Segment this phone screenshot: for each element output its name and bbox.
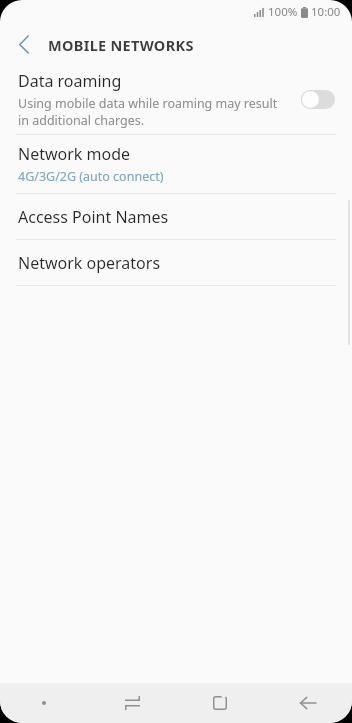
- staticText: 10:00: [311, 4, 341, 20]
- button[interactable]: Network mode: [0, 135, 352, 193]
- button[interactable]: Home: [176, 683, 264, 723]
- staticText: 100%: [268, 4, 298, 20]
- button[interactable]: Access Point Names: [0, 194, 352, 239]
- staticText: Data roaming: [18, 70, 122, 92]
- staticText: 4G/3G/2G (auto connect): [18, 168, 164, 185]
- button[interactable]: Network operators: [0, 240, 352, 285]
- button[interactable]: Data roaming: [0, 64, 352, 134]
- button[interactable]: Menu: [0, 683, 88, 723]
- button[interactable]: Navigate up: [10, 30, 38, 58]
- button[interactable]: Recent apps: [88, 683, 176, 723]
- staticText: Access Point Names: [18, 206, 169, 228]
- staticText: Network operators: [18, 252, 161, 274]
- button[interactable]: Back: [264, 683, 352, 723]
- button[interactable]: Data roaming off: [301, 89, 335, 109]
- staticText: Network mode: [18, 143, 131, 165]
- staticText: MOBILE NETWORKS: [48, 35, 194, 55]
- staticText: Using mobile data while roaming may resu…: [18, 95, 278, 129]
